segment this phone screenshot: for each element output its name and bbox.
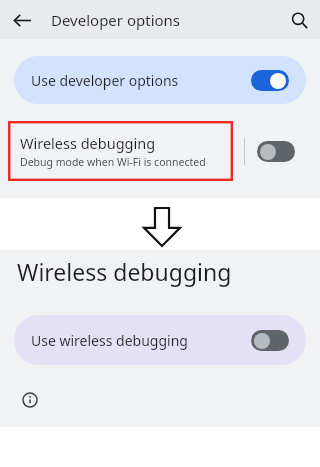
- button[interactable]: Back: [5, 3, 39, 37]
- staticText: Developer options: [51, 10, 181, 30]
- staticText: Use developer options: [31, 71, 179, 90]
- button[interactable]: Use wireless debugging: [14, 315, 306, 365]
- staticText: Use wireless debugging: [31, 331, 188, 350]
- button[interactable]: Use developer options toggle: [251, 70, 289, 91]
- button[interactable]: Wireless debugging: [8, 121, 233, 181]
- button[interactable]: Use developer options: [14, 56, 306, 104]
- button[interactable]: Use wireless debugging toggle: [251, 330, 289, 351]
- button[interactable]: Info: [17, 387, 43, 413]
- button[interactable]: Search: [282, 3, 316, 37]
- button[interactable]: Wireless debugging toggle: [257, 141, 295, 162]
- staticText: Debug mode when Wi-Fi is connected: [20, 155, 206, 169]
- staticText: Wireless debugging: [20, 133, 156, 153]
- staticText: Wireless debugging: [17, 256, 232, 287]
